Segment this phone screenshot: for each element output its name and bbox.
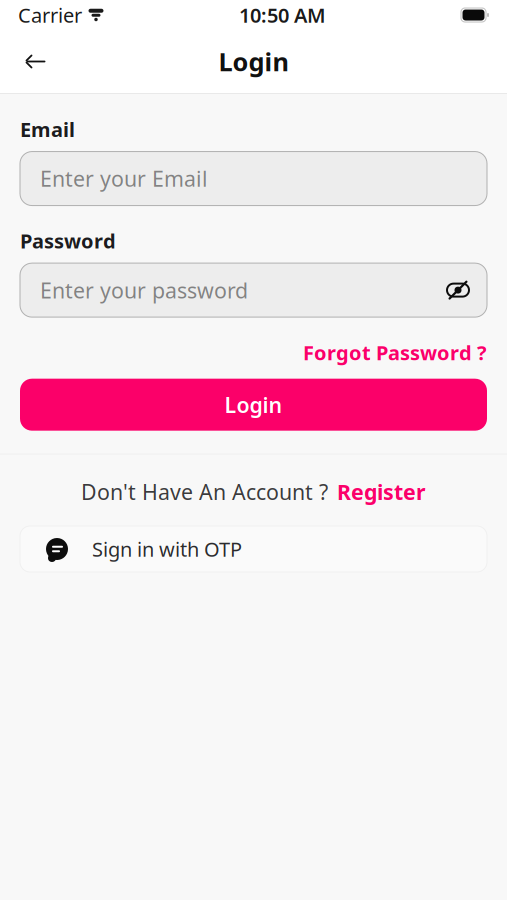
staticText: Don't Have An Account ? (81, 478, 328, 506)
button[interactable]: Forgot Password ? (303, 333, 487, 372)
staticText: Forgot Password ? (303, 339, 487, 366)
staticText: Enter your Email (40, 164, 208, 193)
button[interactable]: Login (20, 379, 487, 431)
staticText: Enter your password (40, 276, 248, 304)
staticText: Email (20, 116, 75, 143)
staticText: Carrier (18, 2, 82, 28)
button[interactable]: Sign in with OTP (0, 526, 507, 572)
staticText: 10:50 AM (239, 2, 326, 28)
button[interactable]: Show password (441, 273, 475, 307)
staticText: Login (224, 390, 282, 419)
button[interactable]: Register (337, 478, 426, 506)
staticText: Password (20, 228, 116, 254)
staticText: Register (337, 478, 426, 506)
staticText: Sign in with OTP (92, 536, 242, 562)
staticText: Login (218, 45, 288, 78)
button[interactable]: Back (14, 39, 58, 83)
